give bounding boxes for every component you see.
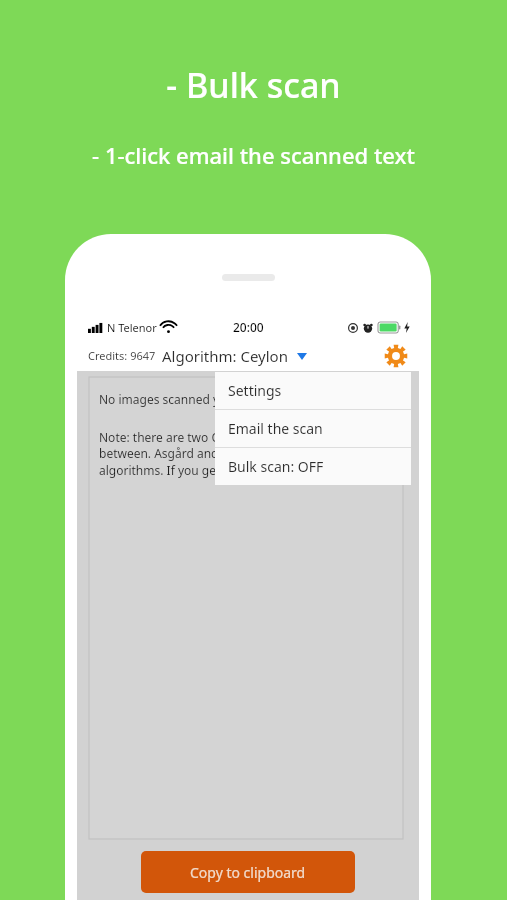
- button[interactable]: Settings: [383, 343, 409, 369]
- button[interactable]: Algorithm: Ceylon: [162, 346, 307, 366]
- button[interactable]: Email the scan: [215, 410, 411, 447]
- staticText: Credits: 9647: [88, 348, 156, 363]
- staticText: Note: there are two OCR engines to choos…: [99, 429, 357, 479]
- staticText: Copy to clipboard: [190, 863, 306, 882]
- staticText: - Bulk scan: [0, 62, 507, 108]
- staticText: Email the scan: [228, 419, 323, 438]
- staticText: N Telenor: [107, 320, 157, 335]
- button[interactable]: Copy to clipboard: [141, 851, 355, 893]
- button[interactable]: Bulk scan: OFF: [215, 448, 411, 485]
- staticText: Settings: [228, 381, 282, 400]
- staticText: No images scanned yet: [99, 391, 231, 407]
- button[interactable]: Settings: [215, 372, 411, 409]
- staticText: 20:00: [233, 319, 264, 335]
- staticText: Algorithm: Ceylon: [162, 346, 288, 366]
- staticText: Bulk scan: OFF: [228, 457, 324, 476]
- staticText: - 1-click email the scanned text: [0, 140, 507, 170]
